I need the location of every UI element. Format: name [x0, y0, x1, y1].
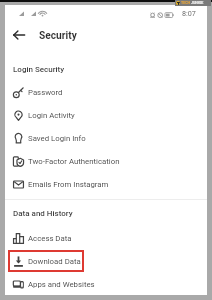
staticText: Emails From Instagram — [28, 180, 109, 189]
button[interactable]: Login Activity — [5, 104, 207, 127]
staticText: Two-Factor Authentication — [28, 157, 120, 166]
button[interactable]: Apps and Websites — [5, 273, 207, 296]
button[interactable]: Two-Factor Authentication — [5, 150, 207, 173]
staticText: Apps and Websites — [28, 280, 95, 289]
staticText: Saved Login Info — [28, 134, 86, 143]
button[interactable]: Password — [5, 81, 207, 104]
staticText: Download Data — [28, 257, 81, 266]
staticText: Login Activity — [28, 111, 75, 120]
staticText: Password — [28, 88, 63, 97]
staticText: TECH — [181, 1, 191, 5]
staticText: Security — [39, 30, 77, 42]
staticText: Data and History — [13, 209, 73, 218]
button[interactable]: Download Data — [5, 250, 207, 273]
button[interactable]: Access Data — [5, 227, 207, 250]
button[interactable]: Saved Login Info — [5, 127, 207, 150]
staticText: Access Data — [28, 234, 72, 243]
staticText: JUNKIE — [191, 1, 204, 5]
staticText: 8:07 — [182, 9, 196, 17]
button[interactable]: Emails From Instagram — [5, 173, 207, 196]
staticText: Login Security — [13, 65, 65, 74]
button[interactable]: Back — [7, 24, 30, 46]
